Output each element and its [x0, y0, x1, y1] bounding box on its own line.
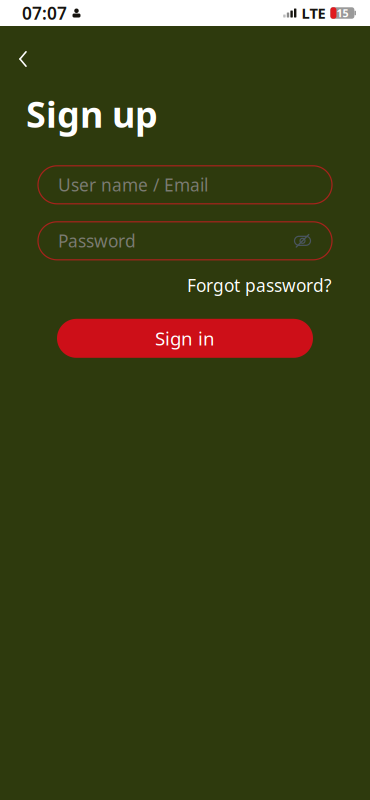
button[interactable]: Back [6, 42, 40, 76]
staticText: Sign in [155, 326, 215, 351]
staticText: User name / Email [58, 173, 208, 196]
staticText: 15 [336, 6, 348, 20]
staticText: Sign up [26, 90, 158, 138]
staticText: Password [58, 229, 136, 252]
button[interactable]: User name / Email [38, 166, 332, 204]
button[interactable]: Forgot password? [187, 274, 332, 297]
staticText: Forgot password? [187, 274, 332, 297]
staticText: 07:07 [22, 1, 67, 24]
button[interactable]: Sign in [57, 319, 313, 358]
button[interactable]: Password [38, 222, 332, 260]
staticText: LTE [301, 3, 325, 23]
